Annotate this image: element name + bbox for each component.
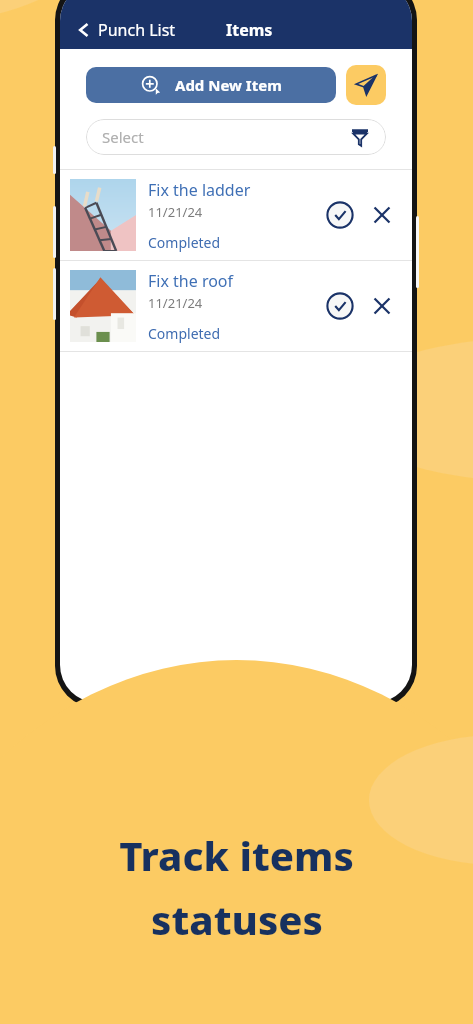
staticText: Completed [148,233,221,252]
button[interactable]: Fix the roof [60,261,412,351]
staticText: Add New Item [175,75,282,95]
button[interactable]: Mark completed [318,193,362,237]
staticText: Fix the ladder [148,179,251,201]
button[interactable]: Punch List [72,19,184,49]
button[interactable]: Remove [362,195,402,235]
button[interactable]: Select [86,119,386,155]
staticText: Items [226,19,273,41]
button[interactable]: Mark completed [318,284,362,328]
button[interactable]: Send [346,65,386,105]
staticText: Track items [119,828,354,882]
staticText: Punch List [98,19,176,41]
button[interactable]: Add New Item [86,67,336,103]
staticText: 11/21/24 [148,294,203,312]
staticText: 11/21/24 [148,203,203,221]
staticText: Fix the roof [148,270,234,292]
staticText: Completed [148,324,221,343]
staticText: statuses [151,892,323,946]
button[interactable]: Remove [362,286,402,326]
staticText: Select [102,127,144,147]
button[interactable]: Fix the ladder [60,170,412,260]
